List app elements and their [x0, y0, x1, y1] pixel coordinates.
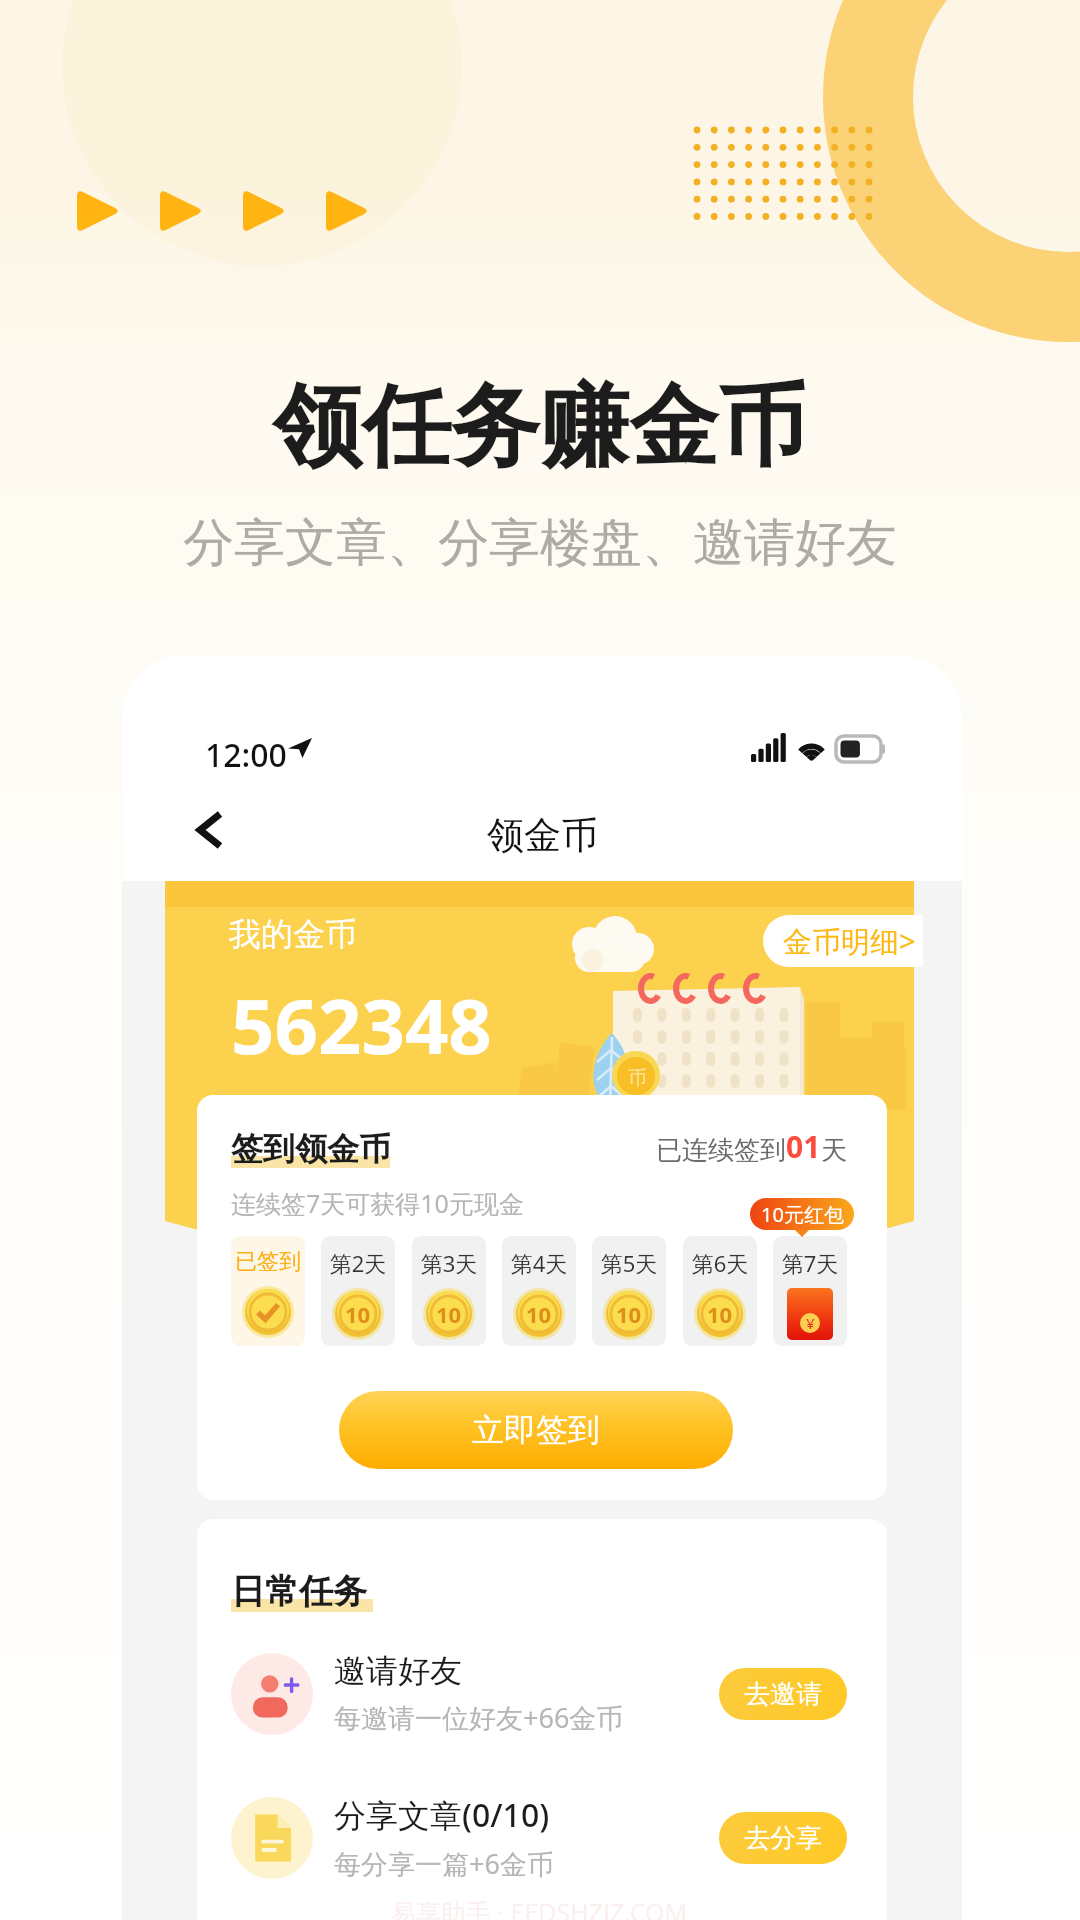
staticText: 领任务赚金币 [0, 371, 1080, 483]
staticText: 去邀请 [744, 1678, 822, 1711]
button[interactable]: 立即签到 [339, 1391, 733, 1469]
staticText: 第6天 [683, 1248, 757, 1278]
button[interactable]: 第2天 [321, 1236, 395, 1346]
staticText: 去分享 [744, 1822, 822, 1855]
staticText: 日常任务 [231, 1570, 367, 1613]
staticText: 10 [616, 1299, 642, 1329]
button[interactable]: 去邀请 [719, 1668, 847, 1720]
staticText: 每邀请一位好友+66金币 [334, 1699, 624, 1736]
button[interactable]: 去分享 [719, 1812, 847, 1864]
staticText: 10 [707, 1299, 733, 1329]
staticText: 第2天 [321, 1248, 395, 1278]
staticText: 第3天 [412, 1248, 486, 1278]
staticText: 立即签到 [472, 1410, 600, 1450]
button[interactable]: 已签到 [231, 1236, 305, 1346]
button[interactable]: 金币明细> [763, 915, 923, 967]
staticText: 10 [526, 1299, 552, 1329]
staticText: 金币明细> [783, 921, 916, 961]
staticText: 币 [628, 1066, 647, 1090]
staticText: 第4天 [502, 1248, 576, 1278]
staticText: 10 [436, 1299, 462, 1329]
staticText: 已签到 [231, 1248, 305, 1276]
button[interactable]: 邀请好友 [231, 1651, 847, 1736]
staticText: 562348 [231, 973, 492, 1077]
staticText: 10元红包 [761, 1201, 844, 1228]
staticText: 10 [345, 1299, 371, 1329]
staticText: 第7天 [773, 1248, 847, 1278]
staticText: 邀请好友 [334, 1651, 462, 1691]
staticText: 我的金币 [229, 914, 357, 954]
button[interactable]: 第3天 [412, 1236, 486, 1346]
staticText: ¥ [806, 1313, 815, 1333]
button[interactable]: Back [186, 805, 236, 855]
staticText: 分享文章(0/10) [334, 1793, 550, 1837]
staticText: 01 [786, 1126, 821, 1167]
button[interactable]: 第5天 [592, 1236, 666, 1346]
staticText: 天 [821, 1134, 847, 1167]
staticText: 12:00 [205, 733, 287, 777]
button[interactable]: 第4天 [502, 1236, 576, 1346]
staticText: 签到领金币 [231, 1129, 391, 1169]
button[interactable]: 第6天 [683, 1236, 757, 1346]
staticText: 易享助手 · EEDSHZJZ.COM [231, 1895, 847, 1920]
staticText: 领金币 [487, 812, 598, 859]
staticText: 已连续签到 [656, 1134, 786, 1167]
button[interactable]: 第7天 [773, 1236, 847, 1346]
staticText: 分享文章、分享楼盘、邀请好友 [0, 511, 1080, 575]
staticText: 第5天 [592, 1248, 666, 1278]
staticText: 连续签7天可获得10元现金 [231, 1186, 524, 1220]
staticText: 每分享一篇+6金币 [334, 1845, 554, 1882]
button[interactable]: 分享文章(0/10) [231, 1793, 847, 1882]
